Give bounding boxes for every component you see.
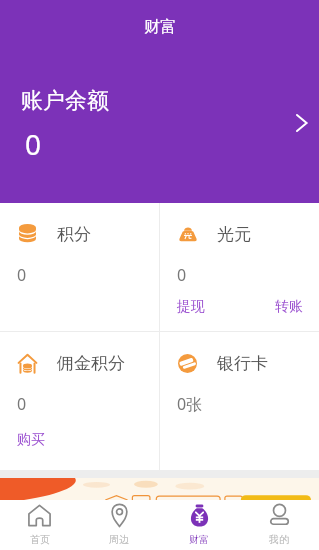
button[interactable]: 首页	[0, 500, 79, 550]
button[interactable]: 周边	[79, 500, 159, 550]
staticText: 佣金积分	[57, 353, 125, 374]
staticText: 财富	[144, 17, 176, 37]
button[interactable]: 转账	[275, 298, 303, 316]
staticText: 财富	[189, 533, 209, 546]
button[interactable]: 财富	[159, 500, 239, 550]
staticText: 0	[17, 393, 27, 415]
staticText: 光元	[217, 224, 251, 245]
button[interactable]: 提现	[177, 298, 205, 316]
button[interactable]: 佣金积分	[0, 332, 159, 470]
staticText: 0张	[177, 393, 203, 415]
staticText: 0	[17, 264, 27, 286]
staticText: 银行卡	[217, 353, 268, 374]
staticText: 周边	[109, 533, 129, 546]
button[interactable]: 光元	[160, 203, 319, 331]
staticText: 账户余额	[21, 87, 109, 115]
staticText: 积分	[57, 224, 91, 245]
button[interactable]: 我的	[239, 500, 319, 550]
staticText: 我的	[269, 533, 289, 546]
staticText: 购买	[17, 431, 45, 449]
button[interactable]: 购买	[17, 431, 45, 449]
button[interactable]: 查看余额明细	[282, 104, 319, 142]
staticText: 0	[177, 264, 187, 286]
staticText: 转账	[275, 298, 303, 316]
button[interactable]: 积分	[0, 203, 159, 331]
staticText: 首页	[30, 533, 50, 546]
button[interactable]: 银行卡	[160, 332, 319, 470]
staticText: 提现	[177, 298, 205, 316]
staticText: 0	[25, 125, 42, 163]
